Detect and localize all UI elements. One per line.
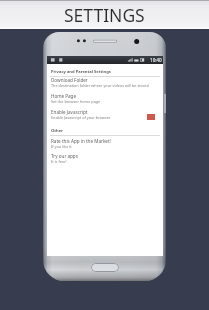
button[interactable]: Try our apps <box>47 151 163 166</box>
staticText: Enable Javascript of your browser <box>51 115 111 120</box>
staticText: Privacy and Parental Settings <box>51 69 111 75</box>
staticText: Enable Javascript <box>51 109 88 115</box>
button[interactable]: Home Page <box>47 91 163 106</box>
staticText: If you like it <box>51 144 72 149</box>
staticText: Rate this App in the Market! <box>51 138 111 144</box>
button[interactable]: Rate this App in the Market! <box>47 136 163 151</box>
staticText: Other <box>51 128 63 134</box>
staticText: It is free! <box>51 159 67 164</box>
staticText: 10:40 <box>150 57 162 63</box>
staticText: Home Page <box>51 93 77 99</box>
staticText: The destination folder where your videos… <box>51 83 149 88</box>
staticText: Set the browser home page <box>51 99 101 104</box>
button[interactable]: Download Folder <box>47 75 163 90</box>
button[interactable]: Home <box>91 263 119 272</box>
staticText: SETTINGS <box>64 3 145 27</box>
staticText: Try our apps <box>51 153 78 159</box>
button[interactable]: Enable Javascript <box>47 107 163 122</box>
staticText: Download Folder <box>51 77 88 83</box>
